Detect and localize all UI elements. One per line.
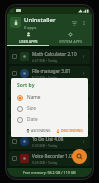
staticText: 12.4 MB • Today <box>32 109 58 114</box>
staticText: 5.03 MB • Today <box>32 143 58 148</box>
button[interactable]: SoundMeter 2.30 <box>9 117 90 132</box>
button[interactable]: File manager 3.81 <box>9 66 90 81</box>
staticText: 3.18 MB • Today <box>32 126 58 131</box>
staticText: Math Calculator 2.10 <box>32 51 77 57</box>
staticText: To Do List 4.08 <box>32 136 64 142</box>
staticText: ASCENDING <box>31 128 51 133</box>
button[interactable]: USER APPS <box>7 31 49 45</box>
staticText: Photo Editor 1.22 <box>32 102 70 108</box>
button[interactable]: Voice Recorder 1.03 <box>9 151 90 166</box>
staticText: File manager 3.81 <box>32 68 71 74</box>
button[interactable]: More options <box>79 18 89 28</box>
staticText: SoundMeter 2.30 <box>32 119 70 125</box>
staticText: Name <box>27 94 41 101</box>
button[interactable]: More options <box>80 53 87 60</box>
staticText: 0 apps <box>24 25 37 30</box>
button[interactable]: Name <box>17 92 84 103</box>
staticText: Free memory: 58.2 GB / 119 GB <box>23 170 76 175</box>
button[interactable]: Search <box>72 149 87 164</box>
button[interactable]: Notes 5.03 <box>9 83 90 98</box>
button[interactable]: ASCENDING <box>25 127 52 134</box>
button[interactable]: More options <box>80 138 87 145</box>
staticText: 2.11 MB • Today <box>32 92 58 97</box>
button[interactable]: More options <box>80 155 87 162</box>
button[interactable]: Free memory: 58.2 GB / 119 GB <box>7 168 92 177</box>
button[interactable]: Photo Editor 1.22 <box>9 100 90 115</box>
staticText: Voice Recorder 1.03 <box>32 153 75 159</box>
staticText: DESCENDING <box>61 128 83 133</box>
staticText: 4.67 MB • Today <box>32 58 58 63</box>
button[interactable]: Size <box>17 103 84 114</box>
staticText: Date <box>27 116 38 123</box>
button[interactable]: Sort <box>69 18 79 28</box>
button[interactable]: More options <box>80 70 87 77</box>
staticText: Notes 5.03 <box>32 85 56 91</box>
staticText: Size <box>27 105 36 112</box>
button[interactable]: Date <box>17 114 84 125</box>
staticText: Sort by <box>17 82 35 89</box>
button[interactable]: SYSTEM APPS <box>49 31 92 45</box>
staticText: SYSTEM APPS <box>59 39 83 44</box>
button[interactable]: To Do List 4.08 <box>9 134 90 149</box>
button[interactable]: DESCENDING <box>55 127 84 134</box>
staticText: 8.22 MB • Today <box>32 75 58 80</box>
staticText: USER APPS <box>19 39 38 44</box>
button[interactable]: App icon <box>10 17 21 28</box>
staticText: 9.05 MB • Today <box>32 160 58 165</box>
staticText: Uninstaller <box>24 16 56 24</box>
button[interactable]: Math Calculator 2.10 <box>9 49 90 64</box>
